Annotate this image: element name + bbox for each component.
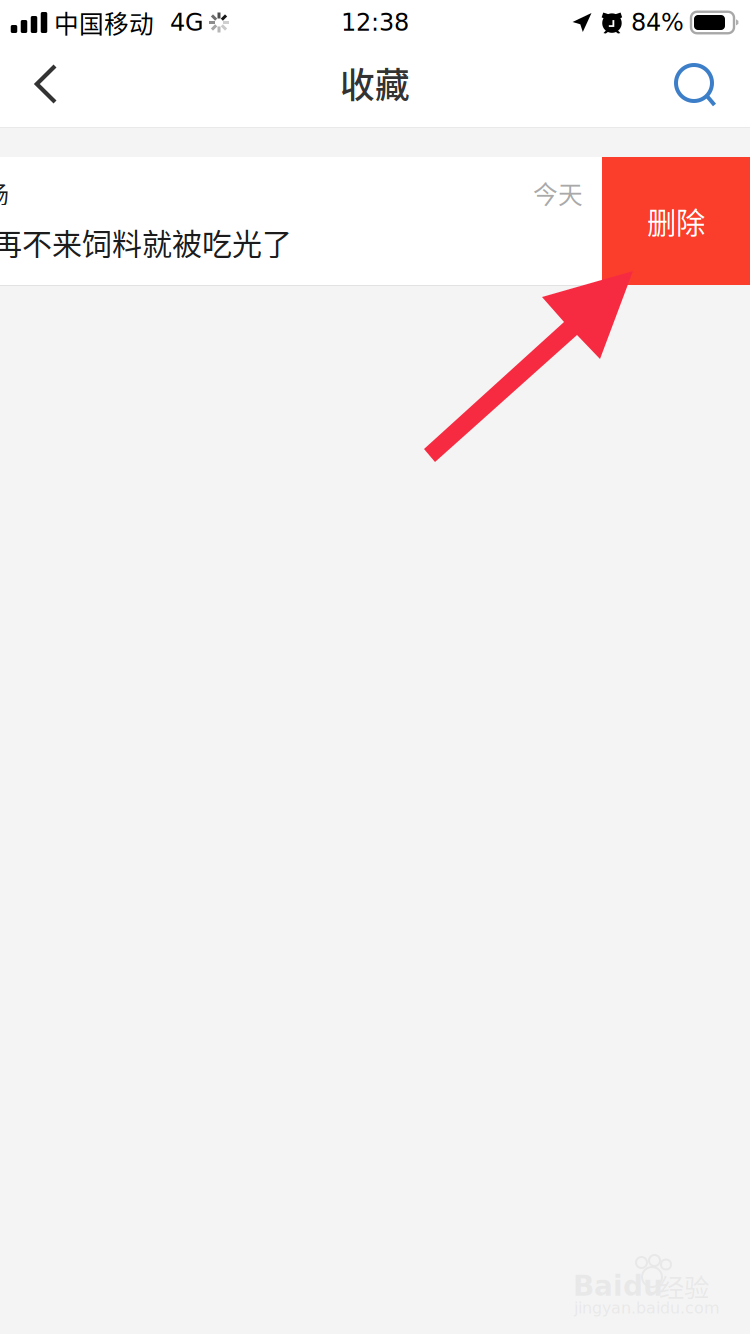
staticText: 84%	[631, 8, 684, 36]
staticText: 收藏	[340, 58, 410, 108]
staticText: 删除	[647, 200, 705, 242]
staticText: 4G	[170, 8, 204, 36]
staticText: 大伙快来再不来饲料就被吃光了	[0, 220, 292, 264]
staticText: Baidu	[573, 1270, 663, 1302]
staticText: jingyan.baidu.com	[574, 1299, 720, 1317]
staticText: 经验	[659, 1268, 709, 1304]
button[interactable]: Back	[0, 45, 74, 127]
staticText: 12:38	[341, 8, 409, 36]
staticText: 中国移动	[54, 5, 154, 40]
button[interactable]: 删除	[602, 157, 750, 285]
button[interactable]: Search	[656, 45, 738, 127]
staticText: 企鹅堂养殖场	[0, 176, 9, 210]
staticText: 今天	[533, 175, 583, 211]
